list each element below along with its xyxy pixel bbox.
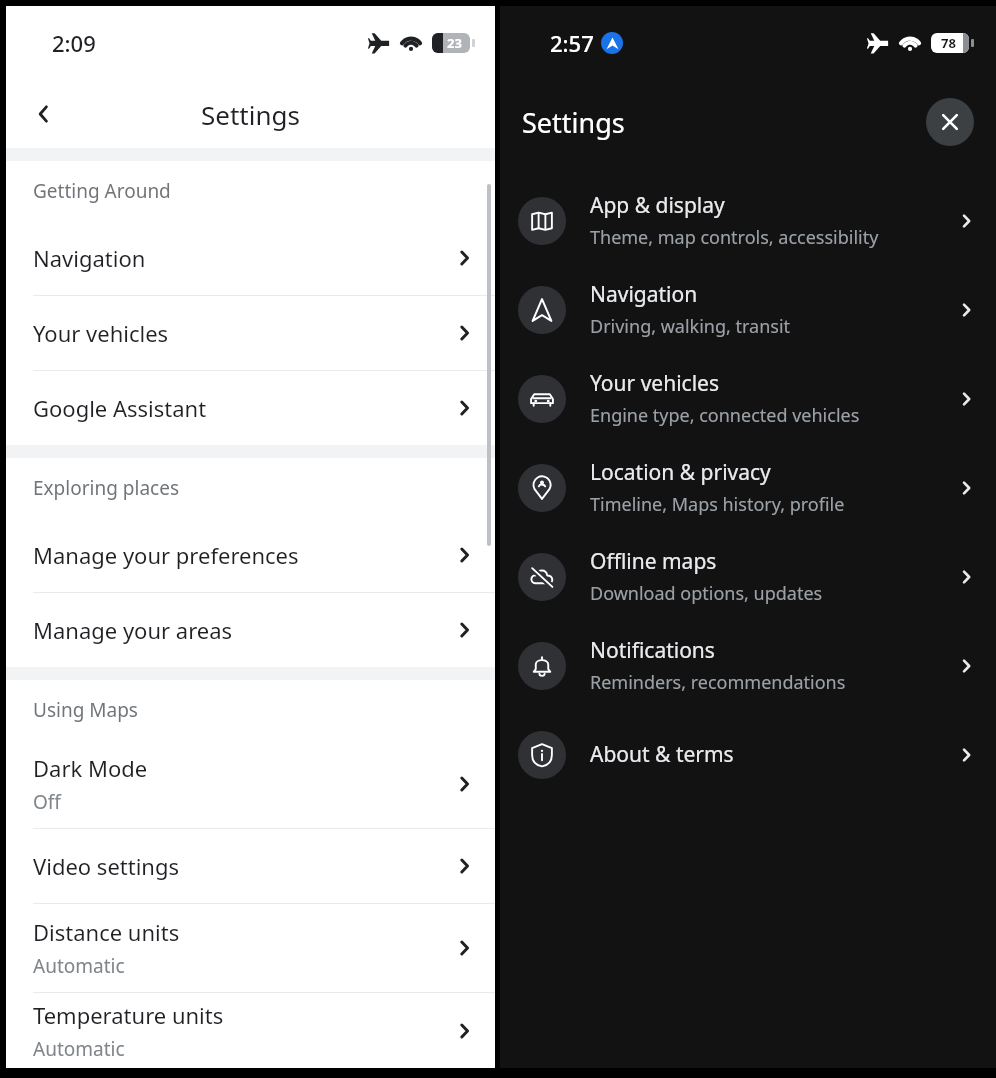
staticText: Manage your areas [33, 615, 233, 645]
button[interactable]: Temperature units [6, 993, 495, 1068]
button[interactable]: Navigation [6, 221, 495, 295]
button[interactable]: Distance units [6, 904, 495, 992]
staticText: Theme, map controls, accessibility [590, 225, 879, 250]
staticText: Download options, updates [590, 581, 823, 606]
staticText: Using Maps [33, 697, 138, 723]
staticText: Video settings [33, 851, 180, 881]
button[interactable]: Video settings [6, 829, 495, 903]
staticText: 2:57 [550, 28, 594, 58]
staticText: 23 [447, 34, 462, 52]
button[interactable]: Navigation [500, 265, 996, 354]
button[interactable]: Back [20, 90, 68, 138]
staticText: Timeline, Maps history, profile [590, 492, 845, 517]
staticText: 2:09 [52, 28, 96, 58]
staticText: 78 [941, 34, 956, 52]
staticText: Exploring places [33, 475, 179, 501]
staticText: About & terms [590, 740, 734, 769]
button[interactable]: Google Assistant [6, 371, 495, 445]
staticText: Your vehicles [590, 369, 719, 398]
staticText: Dark Mode [33, 753, 148, 783]
staticText: Driving, walking, transit [590, 314, 791, 339]
button[interactable]: Close [926, 98, 974, 146]
staticText: Getting Around [33, 178, 171, 204]
staticText: Distance units [33, 917, 180, 947]
button[interactable]: About & terms [500, 710, 996, 799]
staticText: Offline maps [590, 547, 717, 576]
staticText: Your vehicles [33, 318, 169, 348]
button[interactable]: Manage your preferences [6, 518, 495, 592]
staticText: Automatic [33, 1036, 125, 1062]
staticText: Off [33, 789, 61, 815]
staticText: Temperature units [33, 1000, 224, 1030]
button[interactable]: Notifications [500, 621, 996, 710]
button[interactable]: Dark Mode [6, 740, 495, 828]
staticText: Settings [201, 97, 300, 132]
staticText: Engine type, connected vehicles [590, 403, 860, 428]
staticText: Notifications [590, 636, 715, 665]
button[interactable]: Your vehicles [500, 354, 996, 443]
staticText: Reminders, recommendations [590, 670, 846, 695]
staticText: App & display [590, 191, 725, 220]
button[interactable]: Manage your areas [6, 593, 495, 667]
staticText: Settings [522, 104, 625, 141]
button[interactable]: Your vehicles [6, 296, 495, 370]
staticText: Automatic [33, 953, 125, 979]
button[interactable]: Offline maps [500, 532, 996, 621]
staticText: Navigation [33, 243, 146, 273]
staticText: Manage your preferences [33, 540, 299, 570]
button[interactable]: App & display [500, 176, 996, 265]
staticText: Location & privacy [590, 458, 771, 487]
staticText: Navigation [590, 280, 698, 309]
staticText: Google Assistant [33, 393, 207, 423]
button[interactable]: Location & privacy [500, 443, 996, 532]
